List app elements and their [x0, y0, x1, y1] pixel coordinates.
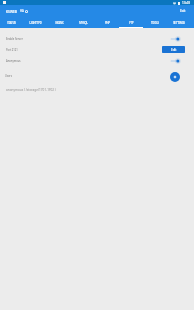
staticText: Edit — [171, 48, 177, 52]
staticText: Anonymous — [6, 59, 21, 63]
staticText: STATUS — [7, 21, 16, 24]
button[interactable]: Anonymous — [0, 55, 194, 66]
staticText: HA — [20, 9, 24, 13]
staticText: KSWEB — [6, 9, 17, 13]
staticText: PHP — [105, 21, 110, 24]
staticText: Users — [5, 74, 12, 78]
button[interactable]: NGINX — [47, 17, 71, 28]
button[interactable]: TOOLS — [143, 17, 167, 28]
staticText: TOOLS — [151, 21, 159, 24]
staticText: LIGHTTPD — [29, 21, 42, 24]
staticText: NGINX — [55, 21, 64, 24]
button[interactable]: Exit — [175, 7, 194, 15]
staticText: Port 2121 — [6, 48, 18, 52]
button[interactable]: Add user — [170, 72, 180, 82]
button[interactable]: Edit — [162, 46, 185, 53]
staticText: SETTINGS — [173, 21, 185, 24]
button[interactable]: anonymous ( /storage/1701-1F02 ) — [0, 81, 194, 98]
button[interactable]: Toggle — [162, 56, 185, 65]
staticText: Enable Server — [6, 37, 23, 41]
button[interactable]: Port 2121 — [0, 44, 194, 55]
button[interactable]: LIGHTTPD — [23, 17, 47, 28]
button[interactable]: Users — [0, 70, 194, 81]
staticText: 13:48 — [182, 1, 190, 5]
staticText: MYSQL — [79, 21, 88, 24]
staticText: Exit — [180, 9, 186, 13]
button[interactable]: FTP — [119, 17, 143, 28]
button[interactable]: STATUS — [0, 17, 23, 28]
button[interactable]: Toggle — [162, 34, 185, 43]
button[interactable]: SETTINGS — [167, 17, 191, 28]
staticText: anonymous ( /storage/1701-1F02 ) — [6, 88, 56, 92]
staticText: FTP — [129, 21, 134, 24]
button[interactable]: PHP — [95, 17, 119, 28]
button[interactable]: Enable Server — [0, 33, 194, 44]
button[interactable]: MYSQL — [71, 17, 95, 28]
